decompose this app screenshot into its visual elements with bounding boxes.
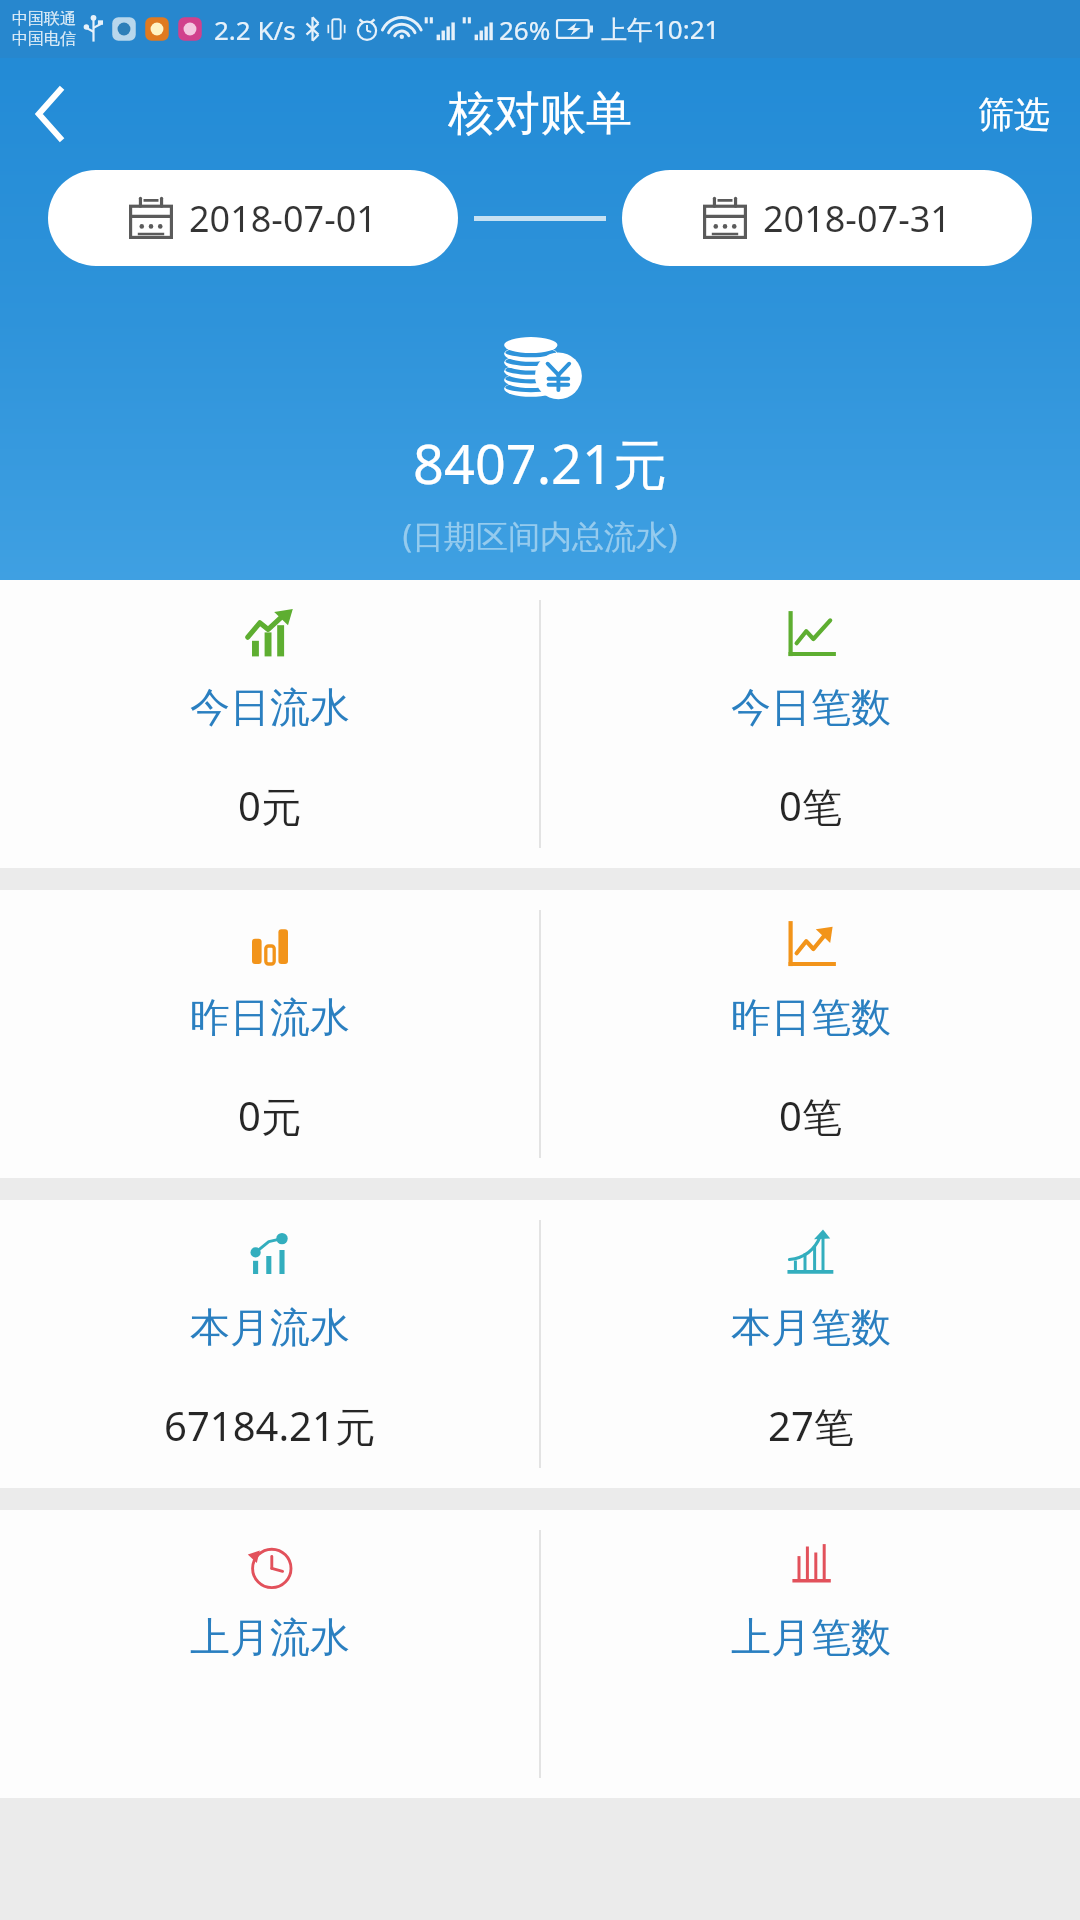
button[interactable]: 上月笔数	[541, 1510, 1080, 1798]
button[interactable]: 昨日流水	[0, 890, 539, 1178]
staticText: 2.2 K/s	[214, 12, 296, 47]
staticText: 昨日流水	[190, 992, 350, 1042]
staticText: 核对账单	[448, 85, 632, 143]
staticText: 今日流水	[190, 682, 350, 732]
staticText: 2018-07-31	[763, 194, 951, 243]
button[interactable]: 筛选	[948, 68, 1080, 161]
button[interactable]: 今日流水	[0, 580, 539, 868]
button[interactable]: 2018-07-01	[48, 170, 458, 266]
staticText: 上月笔数	[731, 1612, 891, 1662]
staticText: 中国联通	[12, 9, 76, 29]
button[interactable]: 2018-07-31	[622, 170, 1032, 266]
staticText: 筛选	[978, 92, 1050, 137]
button[interactable]: 昨日笔数	[541, 890, 1080, 1178]
staticText: 中国电信	[12, 29, 76, 49]
staticText: 上月流水	[190, 1612, 350, 1662]
staticText: 本月笔数	[731, 1302, 891, 1352]
button[interactable]: 上月流水	[0, 1510, 539, 1798]
staticText: 0元	[238, 1088, 301, 1143]
staticText: (日期区间内总流水)	[0, 514, 1080, 558]
staticText: 0笔	[779, 1088, 842, 1143]
staticText: 67184.21元	[164, 1398, 375, 1453]
staticText: 2018-07-01	[189, 194, 377, 243]
button[interactable]: 本月笔数	[541, 1200, 1080, 1488]
button[interactable]: 今日笔数	[541, 580, 1080, 868]
staticText: 本月流水	[190, 1302, 350, 1352]
button[interactable]: Back	[0, 64, 100, 164]
staticText: 昨日笔数	[731, 992, 891, 1042]
button[interactable]: 本月流水	[0, 1200, 539, 1488]
staticText: 27笔	[768, 1398, 854, 1453]
staticText: 0笔	[779, 778, 842, 833]
staticText: 今日笔数	[731, 682, 891, 732]
staticText: 0元	[238, 778, 301, 833]
staticText: 8407.21元	[0, 426, 1080, 500]
staticText: 上午10:21	[601, 11, 720, 47]
staticText: 26%	[499, 12, 551, 47]
